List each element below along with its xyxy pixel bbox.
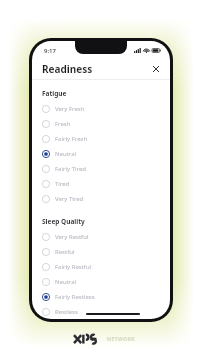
button[interactable]: Fairly Restful [32, 259, 170, 274]
staticText: NETWORK [107, 336, 135, 343]
staticText: Neutral [55, 150, 77, 158]
button[interactable]: Close [149, 62, 162, 75]
staticText: Very Tired [55, 195, 84, 203]
staticText: Fairly Restful [55, 263, 92, 271]
staticText: Restless [55, 308, 78, 316]
button[interactable]: Neutral [32, 146, 170, 161]
button[interactable]: Restless [32, 304, 170, 319]
staticText: 9:17 [44, 47, 56, 55]
staticText: Neutral [55, 278, 77, 286]
button[interactable]: Tired [32, 176, 170, 191]
staticText: Fatigue [42, 89, 67, 98]
button[interactable]: Restful [32, 244, 170, 259]
button[interactable]: Neutral [32, 274, 170, 289]
button[interactable]: Very Restful [32, 229, 170, 244]
staticText: Restful [55, 248, 75, 256]
button[interactable]: Fairly Restless [32, 289, 170, 304]
staticText: Fairly Fresh [55, 135, 88, 143]
staticText: Fairly Restless [55, 293, 95, 301]
staticText: Fairly Tired [55, 165, 86, 173]
staticText: Tired [55, 180, 70, 188]
staticText: Sleep Quality [42, 217, 85, 226]
staticText: Fresh [55, 120, 71, 128]
button[interactable]: Fairly Tired [32, 161, 170, 176]
staticText: Very Fresh [55, 105, 85, 113]
button[interactable]: Fairly Fresh [32, 131, 170, 146]
button[interactable]: Fresh [32, 116, 170, 131]
staticText: Readiness [42, 62, 93, 76]
button[interactable]: Very Tired [32, 191, 170, 206]
staticText: Very Restful [55, 233, 89, 241]
button[interactable]: Very Fresh [32, 101, 170, 116]
